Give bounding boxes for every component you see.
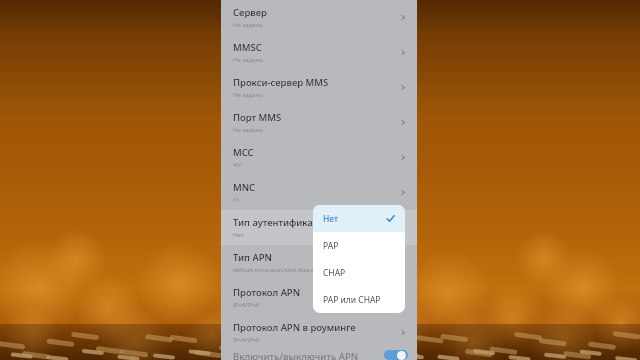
- button[interactable]: MMSC: [221, 35, 417, 70]
- staticText: Прокси-сервер MMS: [233, 76, 329, 89]
- staticText: Не задано: [233, 56, 263, 64]
- staticText: Включить/выключить APN: [233, 350, 359, 360]
- button[interactable]: Сервер: [221, 0, 417, 35]
- staticText: Тип аутентификации: [233, 216, 331, 229]
- button[interactable]: MCC: [221, 140, 417, 175]
- staticText: 01: [233, 196, 240, 204]
- staticText: Не задано: [233, 21, 263, 29]
- button[interactable]: PAP: [313, 232, 405, 259]
- button[interactable]: Включить/выключить APN: [221, 350, 417, 360]
- button[interactable]: PAP или CHAP: [313, 286, 405, 313]
- button[interactable]: MNC: [221, 175, 417, 210]
- staticText: PAP: [323, 240, 339, 252]
- staticText: Не задано: [233, 91, 263, 99]
- button[interactable]: Порт MMS: [221, 105, 417, 140]
- staticText: Нет: [233, 231, 244, 239]
- staticText: PAP или CHAP: [323, 294, 381, 306]
- button[interactable]: Протокол APN в роуминге: [221, 315, 417, 350]
- button[interactable]: Протокол APN: [221, 280, 417, 315]
- staticText: IPv4/IPv6: [233, 336, 260, 344]
- staticText: default,mms,supl,hipri,fota,cb: [233, 266, 318, 274]
- staticText: Протокол APN: [233, 286, 301, 299]
- staticText: Сервер: [233, 6, 267, 19]
- staticText: Порт MMS: [233, 111, 282, 124]
- staticText: CHAP: [323, 267, 346, 279]
- button[interactable]: Тип аутентификации: [221, 210, 417, 245]
- staticText: MNC: [233, 181, 256, 194]
- staticText: Не задано: [233, 126, 263, 134]
- staticText: Тип APN: [233, 251, 272, 264]
- button[interactable]: CHAP: [313, 259, 405, 286]
- button[interactable]: Прокси-сервер MMS: [221, 70, 417, 105]
- staticText: Протокол APN в роуминге: [233, 321, 356, 334]
- button[interactable]: Включить или выключить APN: [384, 350, 408, 360]
- button[interactable]: Нет: [313, 205, 405, 232]
- staticText: MCC: [233, 146, 254, 159]
- staticText: Нет: [323, 213, 338, 225]
- button[interactable]: Тип APN: [221, 245, 417, 280]
- staticText: IPv4/IPv6: [233, 301, 260, 309]
- staticText: 401: [233, 161, 244, 169]
- staticText: MMSC: [233, 41, 262, 54]
